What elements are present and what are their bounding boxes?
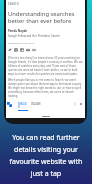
button[interactable]: ENGLISH	[18, 102, 28, 111]
staticText: ENGLISH	[18, 102, 28, 108]
button[interactable]: More options	[73, 102, 77, 106]
staticText: Pandu Nayak	[8, 29, 28, 33]
staticText: Understanding searches better than ever …	[8, 10, 83, 25]
staticText: If there's one thing I've learned over 2…	[8, 56, 83, 76]
button[interactable]: Share on LinkedIn	[20, 48, 24, 52]
button[interactable]: Share on Facebook	[14, 48, 18, 52]
button[interactable]: ITALIAN	[31, 102, 41, 105]
button[interactable]: Copy link	[32, 48, 36, 52]
button[interactable]: Share on Twitter	[8, 48, 12, 52]
staticText: Published Oct 25, 2019	[8, 41, 34, 44]
staticText: Google Fellow and Vice President, Search	[8, 34, 60, 38]
button[interactable]: Share by email	[26, 48, 30, 52]
button[interactable]: When people like you or me come to Searc…	[8, 78, 83, 98]
staticText: SEARCH	[8, 2, 19, 5]
button[interactable]: Close	[79, 102, 83, 106]
staticText: You can read further details visiting yo…	[6, 133, 86, 178]
button[interactable]: Translate	[7, 102, 12, 107]
